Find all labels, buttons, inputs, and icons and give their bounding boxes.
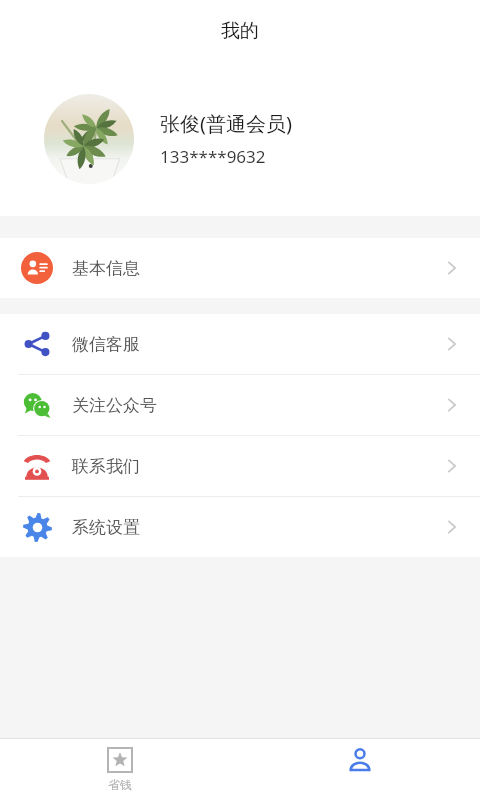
staticText: 我的 bbox=[221, 19, 259, 43]
staticText: 基本信息 bbox=[72, 258, 140, 279]
button[interactable]: 联系我们 bbox=[0, 436, 480, 496]
staticText: 联系我们 bbox=[72, 456, 140, 477]
button[interactable]: 系统设置 bbox=[0, 497, 480, 557]
staticText: 张俊(普通会员) bbox=[160, 110, 292, 137]
button[interactable]: 张俊(普通会员) bbox=[0, 62, 480, 216]
staticText: 系统设置 bbox=[72, 517, 140, 538]
staticText: 133****9632 bbox=[160, 145, 266, 168]
staticText: 微信客服 bbox=[72, 334, 140, 355]
staticText: 关注公众号 bbox=[72, 395, 157, 416]
staticText: 省钱 bbox=[108, 777, 132, 792]
button[interactable]: 关注公众号 bbox=[0, 375, 480, 435]
button[interactable]: 微信客服 bbox=[0, 314, 480, 374]
button[interactable]: 省钱 bbox=[0, 738, 240, 800]
button[interactable]: 我的 bbox=[240, 738, 480, 800]
button[interactable]: 基本信息 bbox=[0, 238, 480, 298]
